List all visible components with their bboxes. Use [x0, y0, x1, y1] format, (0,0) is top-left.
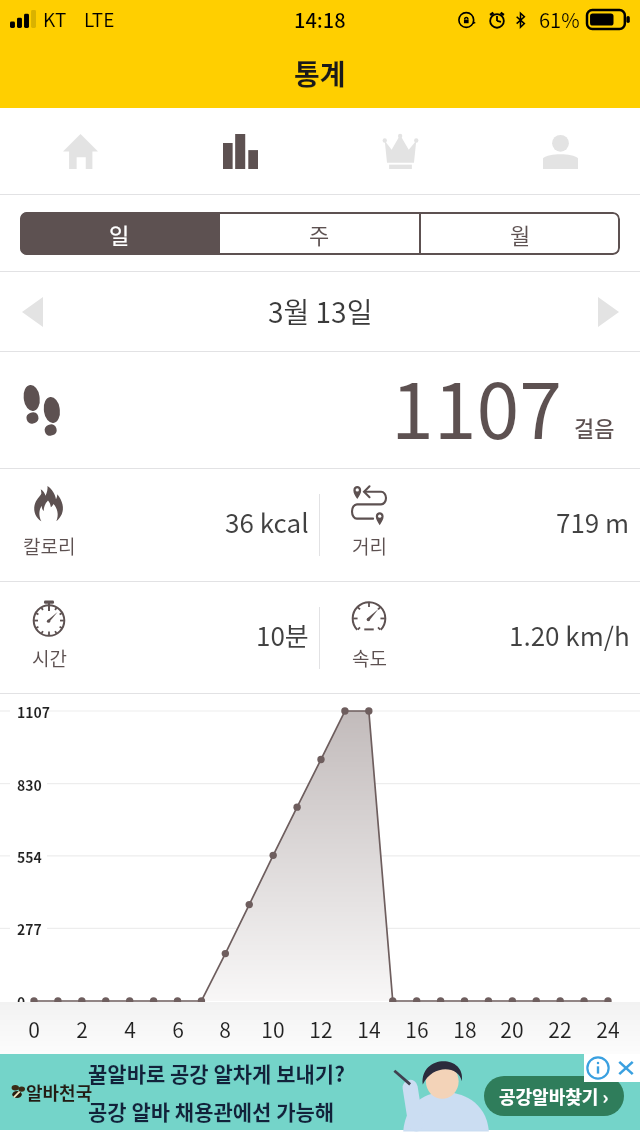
staticText: 알바천국: [26, 1079, 93, 1105]
button[interactable]: 칼로리: [18, 469, 309, 581]
staticText: 8: [212, 1014, 238, 1044]
button[interactable]: Statistics: [160, 108, 320, 194]
button[interactable]: Ranking: [320, 108, 480, 194]
staticText: LTE: [84, 5, 115, 33]
button[interactable]: 월: [421, 212, 620, 255]
button[interactable]: 속도: [338, 582, 630, 693]
staticText: 2: [69, 1014, 95, 1044]
staticText: 20: [499, 1014, 525, 1044]
staticText: 속도: [352, 644, 387, 672]
staticText: 주: [309, 218, 330, 250]
staticText: 시간: [32, 644, 67, 672]
button[interactable]: 공강알바찾기 ›: [484, 1076, 624, 1116]
button[interactable]: Profile: [480, 108, 640, 194]
staticText: 277: [17, 919, 42, 939]
staticText: 일: [109, 218, 130, 250]
staticText: 554: [17, 847, 42, 867]
staticText: 4: [117, 1014, 143, 1044]
staticText: 거리: [352, 532, 387, 560]
staticText: 꿀알바로 공강 알차게 보내기?: [88, 1058, 345, 1088]
staticText: 칼로리: [23, 532, 76, 560]
button[interactable]: 거리: [338, 469, 630, 581]
staticText: 10분: [256, 616, 309, 654]
staticText: 월: [510, 218, 531, 250]
staticText: 3월 13일: [268, 291, 373, 332]
button[interactable]: Previous day: [4, 284, 60, 340]
button[interactable]: Ad info: [584, 1054, 612, 1082]
button[interactable]: 일: [20, 212, 218, 255]
button[interactable]: 시간: [18, 582, 309, 693]
staticText: 719 m: [556, 503, 630, 541]
button[interactable]: 1107: [24, 352, 615, 468]
staticText: 통계: [294, 53, 346, 94]
staticText: 14: [356, 1014, 382, 1044]
staticText: 14:18: [294, 5, 346, 34]
staticText: 12: [308, 1014, 334, 1044]
staticText: 1.20 km/h: [509, 616, 630, 654]
staticText: 10: [260, 1014, 286, 1044]
staticText: 830: [17, 775, 42, 795]
staticText: 1107: [17, 702, 51, 722]
staticText: 22: [547, 1014, 573, 1044]
button[interactable]: Home: [0, 108, 160, 194]
button[interactable]: Next day: [580, 284, 636, 340]
staticText: 공강알바찾기 ›: [499, 1083, 609, 1109]
staticText: 1107: [391, 350, 562, 461]
staticText: 0: [21, 1014, 47, 1044]
staticText: 공강 알바 채용관에선 가능해: [88, 1096, 335, 1126]
button[interactable]: 주: [220, 212, 419, 255]
staticText: 24: [595, 1014, 621, 1044]
staticText: 61%: [539, 5, 580, 34]
staticText: 걸음: [574, 411, 615, 443]
staticText: 18: [452, 1014, 478, 1044]
staticText: KT: [43, 5, 67, 33]
staticText: 36 kcal: [225, 503, 309, 541]
button[interactable]: Close ad: [612, 1054, 640, 1082]
button[interactable]: 알바천국: [0, 1054, 640, 1130]
staticText: 6: [165, 1014, 191, 1044]
staticText: 16: [404, 1014, 430, 1044]
staticText: 0: [17, 992, 26, 1012]
